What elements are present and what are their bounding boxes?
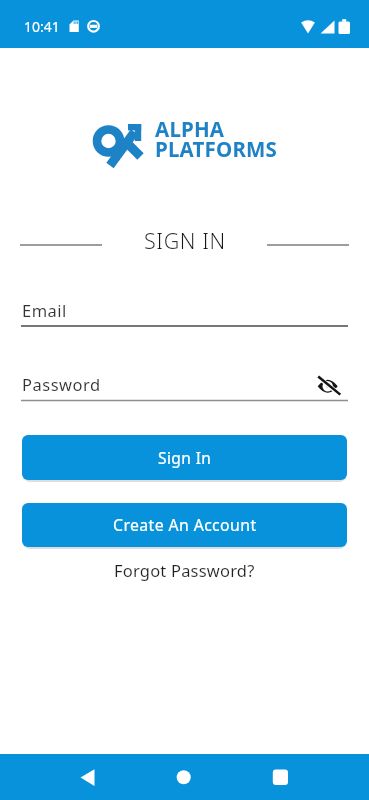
staticText: SIGN IN [144,226,226,255]
button[interactable] [123,754,246,800]
staticText: Create An Account [113,514,257,536]
staticText: 10:41 [24,17,60,36]
button[interactable] [246,754,369,800]
button[interactable]: Create An Account [22,503,347,547]
staticText: Email [22,299,67,321]
button[interactable] [0,754,123,800]
staticText: PLATFORMS [155,135,278,163]
staticText: Password [22,373,101,395]
staticText: Sign In [158,447,212,468]
button[interactable] [22,295,347,327]
button[interactable]: Forgot Password? [114,559,255,581]
button[interactable]: Sign In [22,435,347,480]
button[interactable] [22,369,308,402]
button[interactable] [312,369,347,402]
staticText: ALPHA [155,115,225,143]
